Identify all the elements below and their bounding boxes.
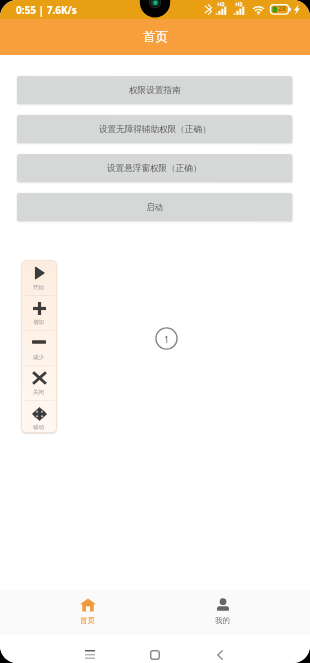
button[interactable]: 移动 — [21, 400, 57, 433]
button[interactable]: 设置悬浮窗权限（正确） — [17, 154, 292, 182]
button[interactable]: 减少 — [21, 330, 57, 365]
button[interactable]: Home — [122, 637, 187, 663]
staticText: 设置无障得辅助权限（正确） — [99, 124, 211, 135]
button[interactable]: 关闭 — [21, 365, 57, 400]
staticText: 设置悬浮窗权限（正确） — [107, 163, 202, 174]
button[interactable]: 我的 — [155, 590, 290, 635]
staticText: 增加 — [33, 319, 45, 326]
staticText: 0:55 | 7.6K/s — [16, 3, 77, 17]
staticText: 减少 — [33, 354, 45, 361]
button[interactable]: Recents — [57, 637, 122, 663]
staticText: 开始 — [33, 284, 45, 291]
button[interactable]: 权限设置指南 — [17, 76, 292, 104]
staticText: 关闭 — [33, 389, 45, 396]
button[interactable]: 启动 — [17, 193, 292, 221]
button[interactable]: 首页 — [20, 590, 155, 635]
button[interactable]: 开始 — [21, 260, 57, 295]
staticText: 启动 — [146, 202, 164, 213]
staticText: 我的 — [215, 616, 230, 625]
button[interactable]: 设置无障得辅助权限（正确） — [17, 115, 292, 143]
staticText: 1 — [164, 333, 170, 345]
staticText: 首页 — [143, 29, 168, 45]
button[interactable]: Back — [187, 637, 252, 663]
staticText: 移动 — [33, 424, 45, 431]
staticText: 权限设置指南 — [129, 85, 181, 96]
staticText: 28 — [278, 4, 287, 14]
button[interactable]: 增加 — [21, 295, 57, 330]
staticText: 首页 — [80, 616, 95, 625]
